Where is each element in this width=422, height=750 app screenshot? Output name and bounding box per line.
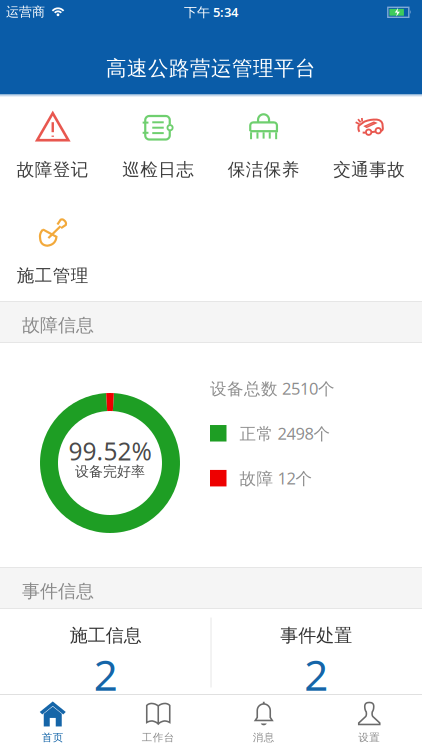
button[interactable]: 施工管理 bbox=[0, 215, 105, 286]
staticText: 事件信息 bbox=[22, 580, 94, 602]
button[interactable]: 巡检日志 bbox=[105, 109, 211, 180]
staticText: 巡检日志 bbox=[122, 159, 194, 180]
staticText: 施工管理 bbox=[17, 265, 89, 286]
button[interactable]: 工作台 bbox=[105, 700, 211, 744]
staticText: 设备完好率 bbox=[75, 463, 145, 480]
button[interactable]: 施工信息 bbox=[0, 609, 211, 696]
button[interactable]: 首页 bbox=[0, 700, 105, 744]
staticText: 施工信息 bbox=[70, 624, 142, 646]
staticText: 运营商 bbox=[6, 4, 45, 20]
staticText: 首页 bbox=[42, 731, 64, 744]
staticText: 事件处置 bbox=[280, 624, 352, 646]
staticText: 故障信息 bbox=[22, 314, 94, 336]
staticText: 故障 12个 bbox=[239, 467, 312, 489]
button[interactable]: 设置 bbox=[316, 700, 422, 744]
staticText: 设备总数 2510个 bbox=[210, 377, 335, 399]
button[interactable]: 消息 bbox=[211, 700, 316, 744]
staticText: 交通事故 bbox=[333, 159, 405, 180]
staticText: 设置 bbox=[358, 731, 380, 744]
button[interactable]: 交通事故 bbox=[316, 109, 422, 180]
staticText: 2 bbox=[94, 647, 118, 702]
staticText: 下午 5:34 bbox=[184, 3, 238, 21]
staticText: 工作台 bbox=[142, 731, 175, 744]
staticText: 故障登记 bbox=[17, 159, 89, 180]
staticText: 高速公路营运管理平台 bbox=[106, 56, 316, 81]
button[interactable]: 保洁保养 bbox=[211, 109, 316, 180]
staticText: 保洁保养 bbox=[228, 159, 300, 180]
button[interactable]: 故障登记 bbox=[0, 109, 105, 180]
staticText: 正常 2498个 bbox=[239, 422, 330, 444]
button[interactable]: 事件处置 bbox=[211, 609, 421, 696]
staticText: 99.52% bbox=[68, 435, 151, 467]
staticText: 2 bbox=[304, 647, 328, 702]
staticText: 消息 bbox=[253, 731, 275, 744]
